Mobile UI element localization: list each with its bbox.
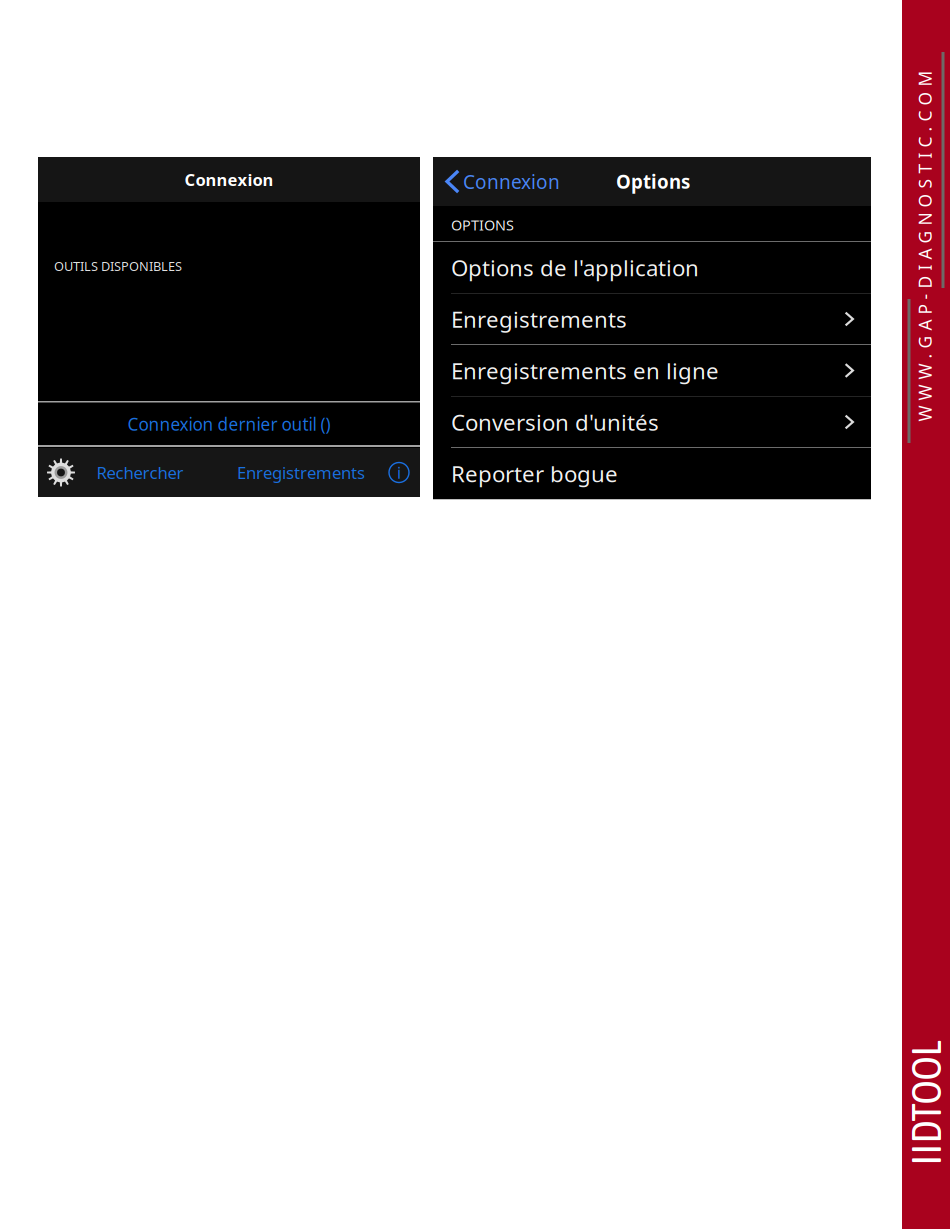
staticText: Conversion d'unités bbox=[451, 407, 659, 437]
staticText: i bbox=[397, 462, 401, 483]
staticText: Enregistrements bbox=[237, 461, 365, 484]
button[interactable]: Enregistrements bbox=[433, 293, 871, 345]
staticText: OUTILS DISPONIBLES bbox=[54, 257, 182, 275]
button[interactable]: Connexion bbox=[433, 157, 573, 206]
staticText: Connexion dernier outil () bbox=[127, 412, 330, 436]
button[interactable]: Conversion d'unités bbox=[433, 396, 871, 448]
staticText: Reporter bogue bbox=[451, 458, 618, 489]
staticText: OPTIONS bbox=[451, 215, 514, 235]
staticText: Rechercher bbox=[96, 461, 183, 484]
button[interactable]: Enregistrements en ligne bbox=[433, 345, 871, 396]
staticText: Enregistrements bbox=[451, 304, 627, 334]
button[interactable]: Rechercher bbox=[85, 448, 195, 497]
staticText: Enregistrements en ligne bbox=[451, 355, 719, 386]
button[interactable]: Reporter bogue bbox=[433, 448, 871, 499]
staticText: Options bbox=[616, 169, 690, 194]
staticText: Options de l'application bbox=[451, 252, 699, 283]
button[interactable]: Informations bbox=[379, 448, 419, 497]
staticText: Connexion bbox=[463, 168, 560, 194]
button[interactable]: Réglages bbox=[40, 448, 82, 497]
staticText: Connexion bbox=[184, 168, 273, 191]
button[interactable]: Options de l'application bbox=[433, 242, 871, 293]
button[interactable]: Enregistrements bbox=[226, 448, 376, 497]
button[interactable]: Connexion dernier outil () bbox=[38, 402, 420, 445]
